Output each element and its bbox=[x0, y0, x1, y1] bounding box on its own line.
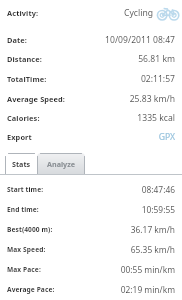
staticText: 10:59:55 bbox=[141, 204, 175, 215]
staticText: 25.83 km/h bbox=[129, 93, 175, 105]
staticText: 56.81 km bbox=[138, 53, 175, 65]
staticText: 1335 kcal bbox=[137, 112, 175, 124]
staticText: Best(4000 m): bbox=[7, 225, 53, 234]
button[interactable]: Max Pace: bbox=[0, 259, 182, 279]
button[interactable]: Distance: bbox=[0, 49, 182, 69]
staticText: Calories: bbox=[7, 113, 40, 123]
staticText: 02:11:57 bbox=[140, 73, 175, 85]
staticText: Start time: bbox=[7, 185, 44, 194]
button[interactable]: Best(4000 m): bbox=[0, 219, 182, 239]
staticText: 02:19 min/km bbox=[120, 284, 175, 295]
button[interactable]: Average Speed: bbox=[0, 89, 182, 108]
button[interactable]: Export bbox=[0, 127, 182, 146]
staticText: GPX bbox=[158, 131, 175, 143]
other: Cycling activity bbox=[157, 5, 179, 21]
button[interactable]: Date: bbox=[0, 30, 182, 49]
staticText: Max Speed: bbox=[7, 245, 46, 254]
staticText: Analyze bbox=[47, 159, 76, 169]
button[interactable]: Start time: bbox=[0, 179, 182, 199]
staticText: Average Speed: bbox=[7, 94, 66, 104]
staticText: Stats bbox=[12, 159, 31, 169]
button[interactable]: Stats bbox=[5, 153, 38, 175]
staticText: Date: bbox=[7, 35, 28, 45]
button[interactable]: Average Pace: bbox=[0, 279, 182, 299]
button[interactable]: Analyze bbox=[37, 153, 85, 175]
staticText: 10/09/2011 08:47 bbox=[105, 34, 175, 46]
staticText: End time: bbox=[7, 205, 39, 214]
staticText: 08:47:46 bbox=[141, 184, 175, 195]
staticText: 00:55 min/km bbox=[120, 264, 175, 275]
staticText: Export bbox=[7, 132, 32, 142]
button[interactable]: End time: bbox=[0, 199, 182, 219]
staticText: Activity: bbox=[7, 8, 39, 18]
staticText: 36.17 km/h bbox=[130, 224, 175, 235]
staticText: TotalTime: bbox=[7, 74, 47, 84]
staticText: Cycling bbox=[124, 7, 153, 19]
button[interactable]: Calories: bbox=[0, 108, 182, 127]
button[interactable]: Max Speed: bbox=[0, 239, 182, 259]
staticText: Average Pace: bbox=[7, 285, 55, 294]
staticText: 65.35 km/h bbox=[130, 244, 175, 255]
button[interactable]: Activity: bbox=[0, 3, 182, 23]
button[interactable]: TotalTime: bbox=[0, 69, 182, 89]
staticText: Distance: bbox=[7, 54, 42, 64]
staticText: Max Pace: bbox=[7, 265, 41, 274]
